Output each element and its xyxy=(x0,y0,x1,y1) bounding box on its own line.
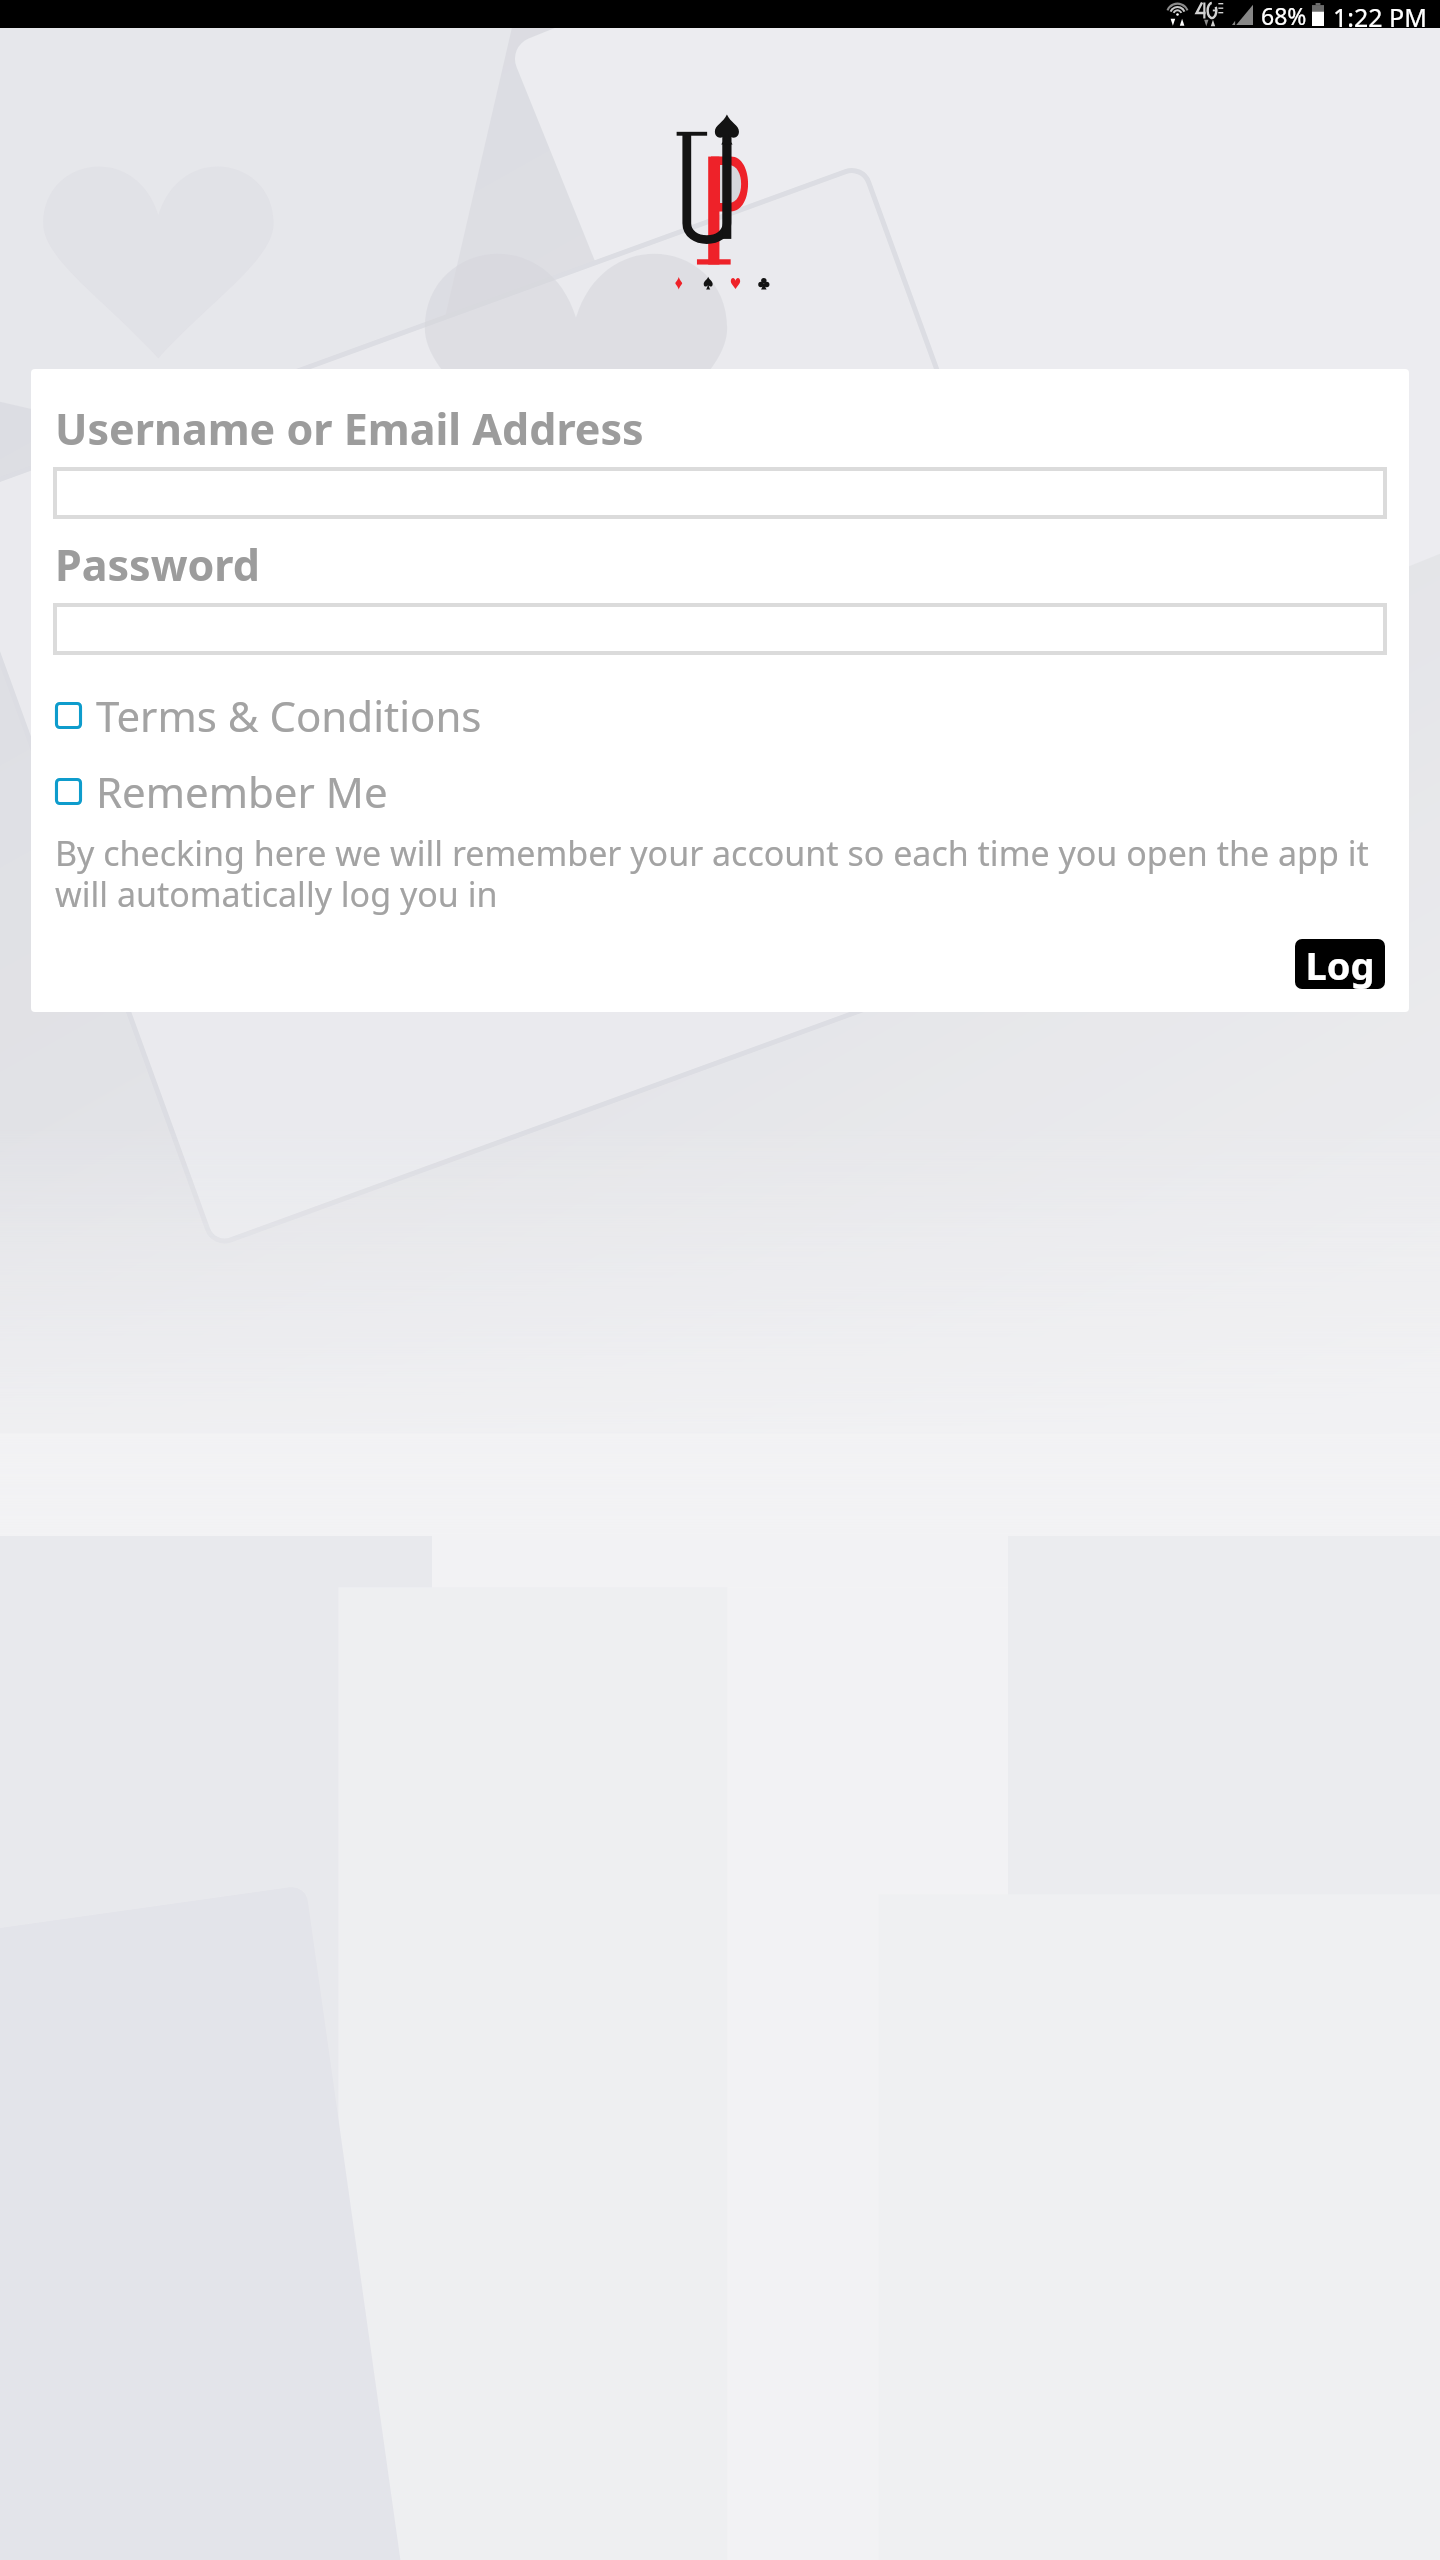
staticText: Terms & Conditions xyxy=(96,687,482,744)
staticText: By checking here we will remember your a… xyxy=(55,830,1385,917)
staticText: 68% xyxy=(1261,0,1307,28)
staticText: Log in xyxy=(1295,939,1385,989)
button[interactable] xyxy=(55,605,1385,653)
staticText: 1:22 PM xyxy=(1333,0,1427,28)
button[interactable]: Remember Me xyxy=(55,763,1385,820)
button[interactable]: Terms & Conditions xyxy=(55,687,1385,744)
other: Remember Me xyxy=(55,778,82,805)
staticText: Username or Email Address xyxy=(55,399,644,458)
staticText: Password xyxy=(55,535,260,594)
button[interactable] xyxy=(55,469,1385,517)
button[interactable]: Log in xyxy=(1295,939,1385,989)
staticText: Remember Me xyxy=(96,763,388,820)
other: Terms & Conditions xyxy=(55,702,82,729)
